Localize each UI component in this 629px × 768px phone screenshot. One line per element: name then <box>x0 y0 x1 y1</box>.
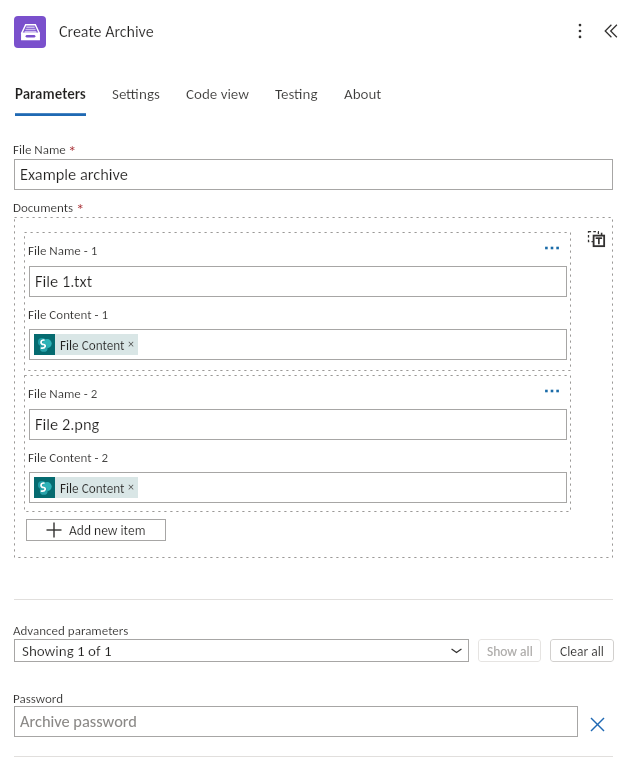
staticText: File Name <box>13 142 66 158</box>
button[interactable]: More commands <box>566 17 594 45</box>
button[interactable]: Showing 1 of 1 <box>14 639 469 662</box>
button[interactable]: Create Archive connector <box>14 16 46 48</box>
staticText: Showing 1 of 1 <box>22 642 112 660</box>
staticText: File Name - 1 <box>28 243 98 259</box>
button[interactable]: Item 2 options <box>540 379 564 403</box>
button[interactable]: Code view <box>186 85 249 116</box>
button[interactable]: Switch to text mode <box>585 227 608 250</box>
staticText: Testing <box>275 85 318 103</box>
button[interactable]: Parameters <box>15 85 86 116</box>
staticText: × <box>128 337 134 352</box>
staticText: File Content - 1 <box>28 307 109 323</box>
button[interactable]: Clear all <box>550 639 614 662</box>
button[interactable]: File 1.txt <box>29 266 567 297</box>
staticText: File 2.png <box>35 414 100 434</box>
button[interactable]: Archive password <box>14 706 578 737</box>
button[interactable]: File Content <box>34 334 138 355</box>
staticText: Password <box>13 691 63 707</box>
button[interactable]: File Content <box>29 329 567 360</box>
button[interactable]: File 2.png <box>29 409 567 440</box>
button[interactable]: Show all <box>478 639 541 662</box>
staticText: Clear all <box>560 643 604 659</box>
staticText: Show all <box>487 643 533 659</box>
button[interactable]: Testing <box>275 85 318 116</box>
button[interactable]: File Content <box>29 472 567 503</box>
staticText: * <box>76 199 85 220</box>
staticText: Example archive <box>20 164 129 184</box>
button[interactable]: File Content <box>34 477 138 498</box>
staticText: File 1.txt <box>35 271 93 291</box>
button[interactable]: Item 1 options <box>540 236 564 260</box>
staticText: Code view <box>186 85 249 103</box>
staticText: File Content <box>60 480 125 496</box>
staticText: Create Archive <box>59 22 154 42</box>
button[interactable]: About <box>344 85 382 116</box>
button[interactable]: Example archive <box>14 159 613 190</box>
staticText: File Content <box>60 337 125 353</box>
staticText: Add new item <box>69 522 146 538</box>
staticText: Settings <box>112 85 160 103</box>
button[interactable]: Collapse panel <box>598 17 626 45</box>
staticText: About <box>344 85 382 103</box>
button[interactable]: Add new item <box>26 519 166 541</box>
staticText: Advanced parameters <box>13 623 129 639</box>
staticText: File Name - 2 <box>28 386 98 402</box>
staticText: Archive password <box>20 711 137 731</box>
button[interactable]: Settings <box>112 85 160 116</box>
staticText: × <box>128 480 134 495</box>
staticText: * <box>68 141 77 162</box>
staticText: Documents <box>13 200 74 216</box>
staticText: Parameters <box>15 85 86 103</box>
staticText: File Content - 2 <box>28 450 109 466</box>
button[interactable]: Remove password parameter <box>584 711 610 737</box>
